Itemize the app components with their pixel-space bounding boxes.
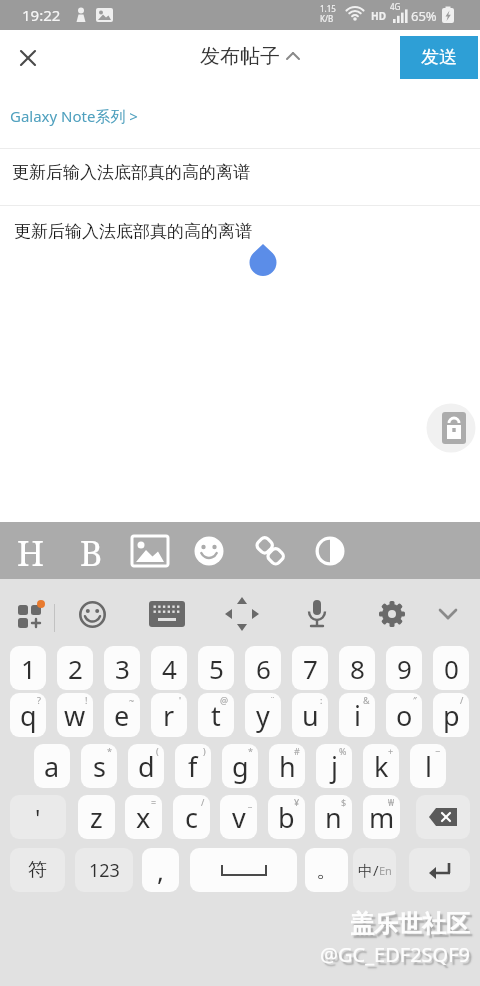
button[interactable]: f	[175, 744, 211, 788]
button[interactable]: 9	[386, 646, 422, 690]
button[interactable]: x	[125, 795, 162, 839]
staticText: −	[435, 745, 441, 757]
button[interactable]: ,	[142, 848, 179, 892]
staticText: 3	[115, 651, 130, 686]
button[interactable]: w	[57, 693, 93, 737]
button[interactable]	[309, 530, 351, 572]
staticText: *	[248, 745, 253, 757]
button[interactable]: 2	[57, 646, 93, 690]
button[interactable]: k	[363, 744, 399, 788]
staticText: 发送	[421, 46, 457, 69]
button[interactable]: 。	[305, 848, 348, 892]
button[interactable]: 5	[198, 646, 234, 690]
button[interactable]: p	[433, 693, 469, 737]
staticText: j	[331, 748, 338, 785]
staticText: e	[114, 697, 130, 734]
button[interactable]: r	[151, 693, 187, 737]
staticText: 8	[350, 651, 365, 686]
button[interactable]	[297, 598, 337, 630]
button[interactable]: a	[34, 744, 70, 788]
button[interactable]	[416, 795, 470, 839]
staticText: b	[278, 799, 295, 836]
staticText: d	[138, 748, 155, 785]
staticText: 4G	[390, 1, 401, 12]
button[interactable]: Galaxy Note系列 >	[0, 100, 200, 134]
button[interactable]: g	[222, 744, 258, 788]
button[interactable]	[147, 598, 187, 630]
button[interactable]: m	[363, 795, 400, 839]
staticText: q	[20, 697, 37, 734]
button[interactable]	[430, 598, 466, 630]
staticText: *	[107, 745, 112, 757]
staticText: p	[443, 697, 460, 734]
button[interactable]: n	[315, 795, 352, 839]
staticText: ₩	[388, 796, 395, 808]
staticText: u	[302, 697, 319, 734]
button[interactable]: 符	[10, 848, 65, 892]
staticText: 5	[209, 651, 224, 686]
button[interactable]: j	[316, 744, 352, 788]
staticText: ¨	[270, 694, 276, 706]
staticText: g	[232, 748, 249, 785]
button[interactable]: '	[10, 795, 66, 839]
button[interactable]: 8	[339, 646, 375, 690]
button[interactable]: 3	[104, 646, 140, 690]
button[interactable]: q	[10, 693, 46, 737]
button[interactable]	[248, 530, 292, 572]
button[interactable]: 中/	[353, 848, 396, 892]
button[interactable]: c	[173, 795, 210, 839]
staticText: /	[201, 796, 205, 808]
staticText: /	[460, 694, 464, 706]
staticText: 123	[89, 858, 120, 883]
button[interactable]: v	[220, 795, 257, 839]
staticText: (	[156, 745, 159, 757]
staticText: '	[35, 801, 41, 834]
button[interactable]: z	[78, 795, 115, 839]
button[interactable]: e	[104, 693, 140, 737]
button[interactable]	[128, 530, 172, 572]
button[interactable]: d	[128, 744, 164, 788]
button[interactable]: 1	[10, 646, 46, 690]
button[interactable]: h	[269, 744, 305, 788]
button[interactable]: b	[268, 795, 305, 839]
staticText: ?	[37, 694, 41, 706]
button[interactable]: 发送	[400, 36, 478, 79]
staticText: k	[374, 748, 389, 785]
staticText: 更新后输入法底部真的高的离谱	[12, 162, 250, 183]
button[interactable]: u	[292, 693, 328, 737]
staticText: t	[211, 697, 221, 734]
button[interactable]: 6	[245, 646, 281, 690]
staticText: ″	[413, 694, 417, 706]
button[interactable]	[10, 598, 50, 630]
button[interactable]: 0	[433, 646, 469, 690]
button[interactable]: y	[245, 693, 281, 737]
button[interactable]	[222, 598, 262, 630]
staticText: _	[248, 796, 252, 808]
button[interactable]: l	[410, 744, 446, 788]
button[interactable]: s	[81, 744, 117, 788]
staticText: h	[279, 748, 296, 785]
button[interactable]: 123	[75, 848, 133, 892]
button[interactable]	[190, 848, 297, 892]
button[interactable]	[8, 40, 48, 76]
staticText: 1	[21, 651, 36, 686]
button[interactable]	[427, 403, 480, 453]
button[interactable]: 7	[292, 646, 328, 690]
button[interactable]	[188, 530, 230, 572]
staticText: ¥	[294, 796, 300, 808]
button[interactable]: t	[198, 693, 234, 737]
button[interactable]: B	[71, 530, 111, 572]
staticText: 盖乐世社区	[350, 909, 470, 939]
staticText: +	[388, 745, 394, 757]
button[interactable]: H	[10, 530, 50, 572]
staticText: :	[320, 694, 323, 706]
button[interactable]: i	[339, 693, 375, 737]
staticText: w	[64, 697, 86, 734]
button[interactable]	[372, 598, 412, 630]
button[interactable]	[72, 598, 112, 630]
staticText: 9	[397, 651, 412, 686]
staticText: $	[341, 796, 347, 808]
button[interactable]: o	[386, 693, 422, 737]
button[interactable]: 4	[151, 646, 187, 690]
button[interactable]	[409, 848, 470, 892]
